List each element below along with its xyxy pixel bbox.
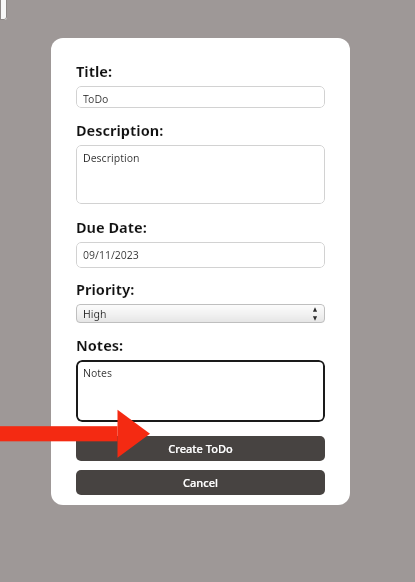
staticText: Create ToDo: [168, 441, 233, 456]
staticText: Cancel: [183, 475, 218, 490]
staticText: Notes:: [76, 335, 124, 355]
staticText: Priority:: [76, 279, 135, 299]
button[interactable]: ToDo: [76, 86, 325, 108]
staticText: ToDo: [83, 92, 109, 106]
button[interactable]: Notes: [76, 360, 325, 422]
staticText: Description:: [76, 120, 164, 140]
staticText: Due Date:: [76, 217, 147, 237]
button[interactable]: 09/11/2023: [76, 242, 325, 268]
staticText: High: [83, 307, 107, 321]
other: Annotation arrow pointing to Create ToDo: [0, 408, 150, 464]
button[interactable]: High: [76, 304, 325, 323]
button[interactable]: Description: [76, 145, 325, 204]
staticText: Title:: [76, 61, 113, 81]
button[interactable]: Create ToDo: [76, 436, 325, 461]
staticText: 09/11/2023: [83, 248, 139, 262]
staticText: Notes: [83, 366, 113, 380]
staticText: Description: [83, 151, 140, 165]
button[interactable]: Cancel: [76, 470, 325, 495]
